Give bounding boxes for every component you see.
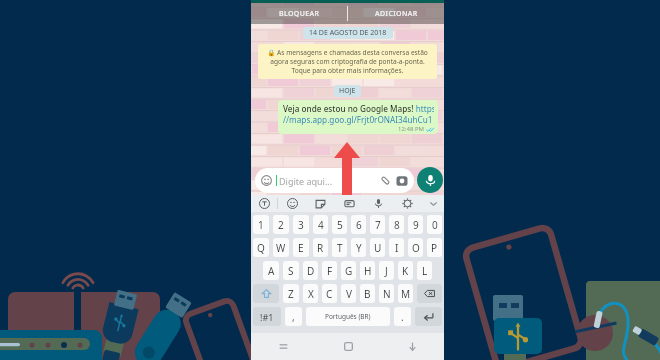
staticText: 0 xyxy=(432,218,438,232)
button[interactable]: R xyxy=(313,238,328,257)
button[interactable]: C xyxy=(322,284,337,303)
staticText: !#1 xyxy=(260,311,274,323)
button[interactable]: enter xyxy=(415,307,442,326)
button[interactable]: !#1 xyxy=(253,307,281,326)
button[interactable]: 1 xyxy=(253,215,269,234)
button[interactable]: 🔒 As mensagens e chamadas desta conversa… xyxy=(258,44,437,79)
button[interactable]: M xyxy=(398,284,413,303)
staticText: 5 xyxy=(337,218,343,232)
staticText: 🔒 As mensagens e chamadas desta conversa… xyxy=(264,48,431,75)
staticText: M xyxy=(401,287,411,301)
staticText: 3 xyxy=(298,218,304,232)
button[interactable]: X xyxy=(303,284,318,303)
button[interactable]: S xyxy=(283,261,299,280)
staticText: , xyxy=(292,310,295,324)
button[interactable]: J xyxy=(379,261,394,280)
button[interactable]: 9 xyxy=(408,215,423,234)
button[interactable]: home xyxy=(316,333,380,360)
button[interactable]: F xyxy=(322,261,337,280)
button[interactable]: A xyxy=(263,261,279,280)
other: Camera xyxy=(396,175,408,187)
staticText: . xyxy=(401,310,404,324)
button[interactable]: mic xyxy=(364,195,393,212)
staticText: H xyxy=(364,264,372,278)
staticText: 14 DE AGOSTO DE 2018 xyxy=(309,28,387,38)
staticText: W xyxy=(276,241,286,255)
button[interactable]: 14 DE AGOSTO DE 2018 xyxy=(303,27,393,39)
staticText: 1 xyxy=(258,218,264,232)
button[interactable]: Veja onde estou no Google Maps! https: /… xyxy=(278,100,438,134)
button[interactable]: 0 xyxy=(427,215,442,234)
button[interactable]: 2 xyxy=(273,215,289,234)
button[interactable]: H xyxy=(360,261,375,280)
button[interactable]: O xyxy=(408,238,423,257)
button[interactable]: , xyxy=(285,307,302,326)
button[interactable]: backspace xyxy=(417,284,442,303)
staticText: Q xyxy=(257,241,265,255)
staticText: T xyxy=(337,241,343,255)
button[interactable]: Voice message xyxy=(417,167,443,193)
button[interactable]: U xyxy=(370,238,385,257)
staticText: U xyxy=(374,241,382,255)
button[interactable]: BLOQUEAR xyxy=(251,3,347,24)
button[interactable]: shift xyxy=(253,284,279,303)
staticText: B xyxy=(364,287,371,301)
staticText: F xyxy=(327,264,333,278)
button[interactable]: P xyxy=(427,238,442,257)
button[interactable]: 6 xyxy=(351,215,366,234)
staticText: L xyxy=(422,264,428,278)
staticText: Veja onde estou no Google Maps! https: /… xyxy=(283,103,434,125)
other: Attach xyxy=(380,175,391,186)
button[interactable]: V xyxy=(341,284,356,303)
button[interactable]: 3 xyxy=(293,215,309,234)
button[interactable]: 7 xyxy=(370,215,385,234)
button[interactable]: 8 xyxy=(389,215,404,234)
button[interactable]: G xyxy=(341,261,356,280)
staticText: Y xyxy=(356,241,362,255)
button[interactable]: HOJE xyxy=(334,85,361,97)
staticText: 12:48 PM xyxy=(398,125,424,133)
staticText: I xyxy=(395,241,399,255)
button[interactable]: Translate xyxy=(251,195,277,212)
staticText: 6 xyxy=(356,218,362,232)
staticText: J xyxy=(385,264,388,278)
staticText: X xyxy=(308,287,314,301)
staticText: N xyxy=(383,287,391,301)
staticText: A xyxy=(268,264,275,278)
staticText: R xyxy=(317,241,324,255)
button[interactable]: ADICIONAR xyxy=(348,3,444,24)
button[interactable]: N xyxy=(379,284,394,303)
staticText: 2 xyxy=(278,218,284,232)
button[interactable]: 5 xyxy=(332,215,347,234)
button[interactable]: Collapse xyxy=(422,195,444,212)
button[interactable]: I xyxy=(389,238,404,257)
staticText: Português (BR) xyxy=(325,312,371,321)
staticText: V xyxy=(346,287,352,301)
button[interactable]: Digite aqui... xyxy=(255,168,414,193)
staticText: Z xyxy=(288,287,294,301)
button[interactable]: L xyxy=(417,261,432,280)
button[interactable]: down xyxy=(380,333,444,360)
button[interactable]: Y xyxy=(351,238,366,257)
button[interactable]: 4 xyxy=(313,215,328,234)
staticText: O xyxy=(412,241,420,255)
button[interactable]: emoji xyxy=(278,195,306,212)
button[interactable]: . xyxy=(394,307,411,326)
button[interactable]: B xyxy=(360,284,375,303)
staticText: K xyxy=(402,264,409,278)
button[interactable]: recent xyxy=(251,333,316,360)
button[interactable]: sticker xyxy=(306,195,335,212)
button[interactable]: gif xyxy=(335,195,364,212)
button[interactable]: settings xyxy=(393,195,422,212)
button[interactable]: W xyxy=(273,238,289,257)
button[interactable]: D xyxy=(303,261,318,280)
staticText: 4 xyxy=(318,218,324,232)
button[interactable]: E xyxy=(293,238,309,257)
button[interactable]: T xyxy=(332,238,347,257)
staticText: ADICIONAR xyxy=(375,9,418,19)
button[interactable]: Z xyxy=(283,284,299,303)
button[interactable]: Q xyxy=(253,238,269,257)
button[interactable]: Português (BR) xyxy=(306,307,390,326)
staticText: Digite aqui... xyxy=(279,175,333,187)
button[interactable]: K xyxy=(398,261,413,280)
